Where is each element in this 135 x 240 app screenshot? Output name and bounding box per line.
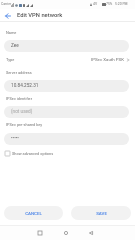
button[interactable]: Recent apps — [34, 227, 46, 239]
button[interactable]: CANCEL — [4, 206, 63, 220]
staticText: IPSec Xauth PSK — [91, 57, 124, 62]
staticText: Type — [6, 57, 15, 62]
staticText: Show advanced options — [12, 151, 54, 156]
staticText: IPSec identifier — [6, 96, 32, 101]
button[interactable]: (not used) — [4, 106, 129, 118]
button[interactable]: Zee — [4, 40, 129, 52]
button[interactable]: SAVE — [71, 206, 131, 220]
staticText: 10.84.252.31 — [11, 83, 39, 89]
button[interactable]: Show advanced options — [5, 148, 54, 158]
button[interactable]: Back — [85, 227, 97, 239]
staticText: (not used) — [11, 109, 33, 115]
staticText: IPSec pre-shared key — [6, 122, 43, 127]
staticText: SAVE — [96, 211, 107, 216]
staticText: Carrier — [1, 2, 12, 6]
staticText: Zee — [11, 43, 19, 49]
staticText: Edit VPN network — [17, 12, 63, 19]
button[interactable]: Navigate up — [1, 9, 14, 22]
staticText: Name — [6, 30, 17, 35]
staticText: 75% — [106, 2, 113, 6]
button[interactable]: Type — [0, 54, 135, 65]
button[interactable]: 10.84.252.31 — [4, 80, 129, 92]
staticText: Server address — [6, 70, 32, 75]
staticText: ••••• — [11, 136, 19, 142]
staticText: 4V — [93, 2, 98, 6]
staticText: 5:20 PM — [115, 2, 128, 6]
button[interactable]: Home — [60, 227, 72, 239]
button[interactable]: ••••• — [4, 133, 129, 145]
staticText: CANCEL — [25, 211, 42, 216]
